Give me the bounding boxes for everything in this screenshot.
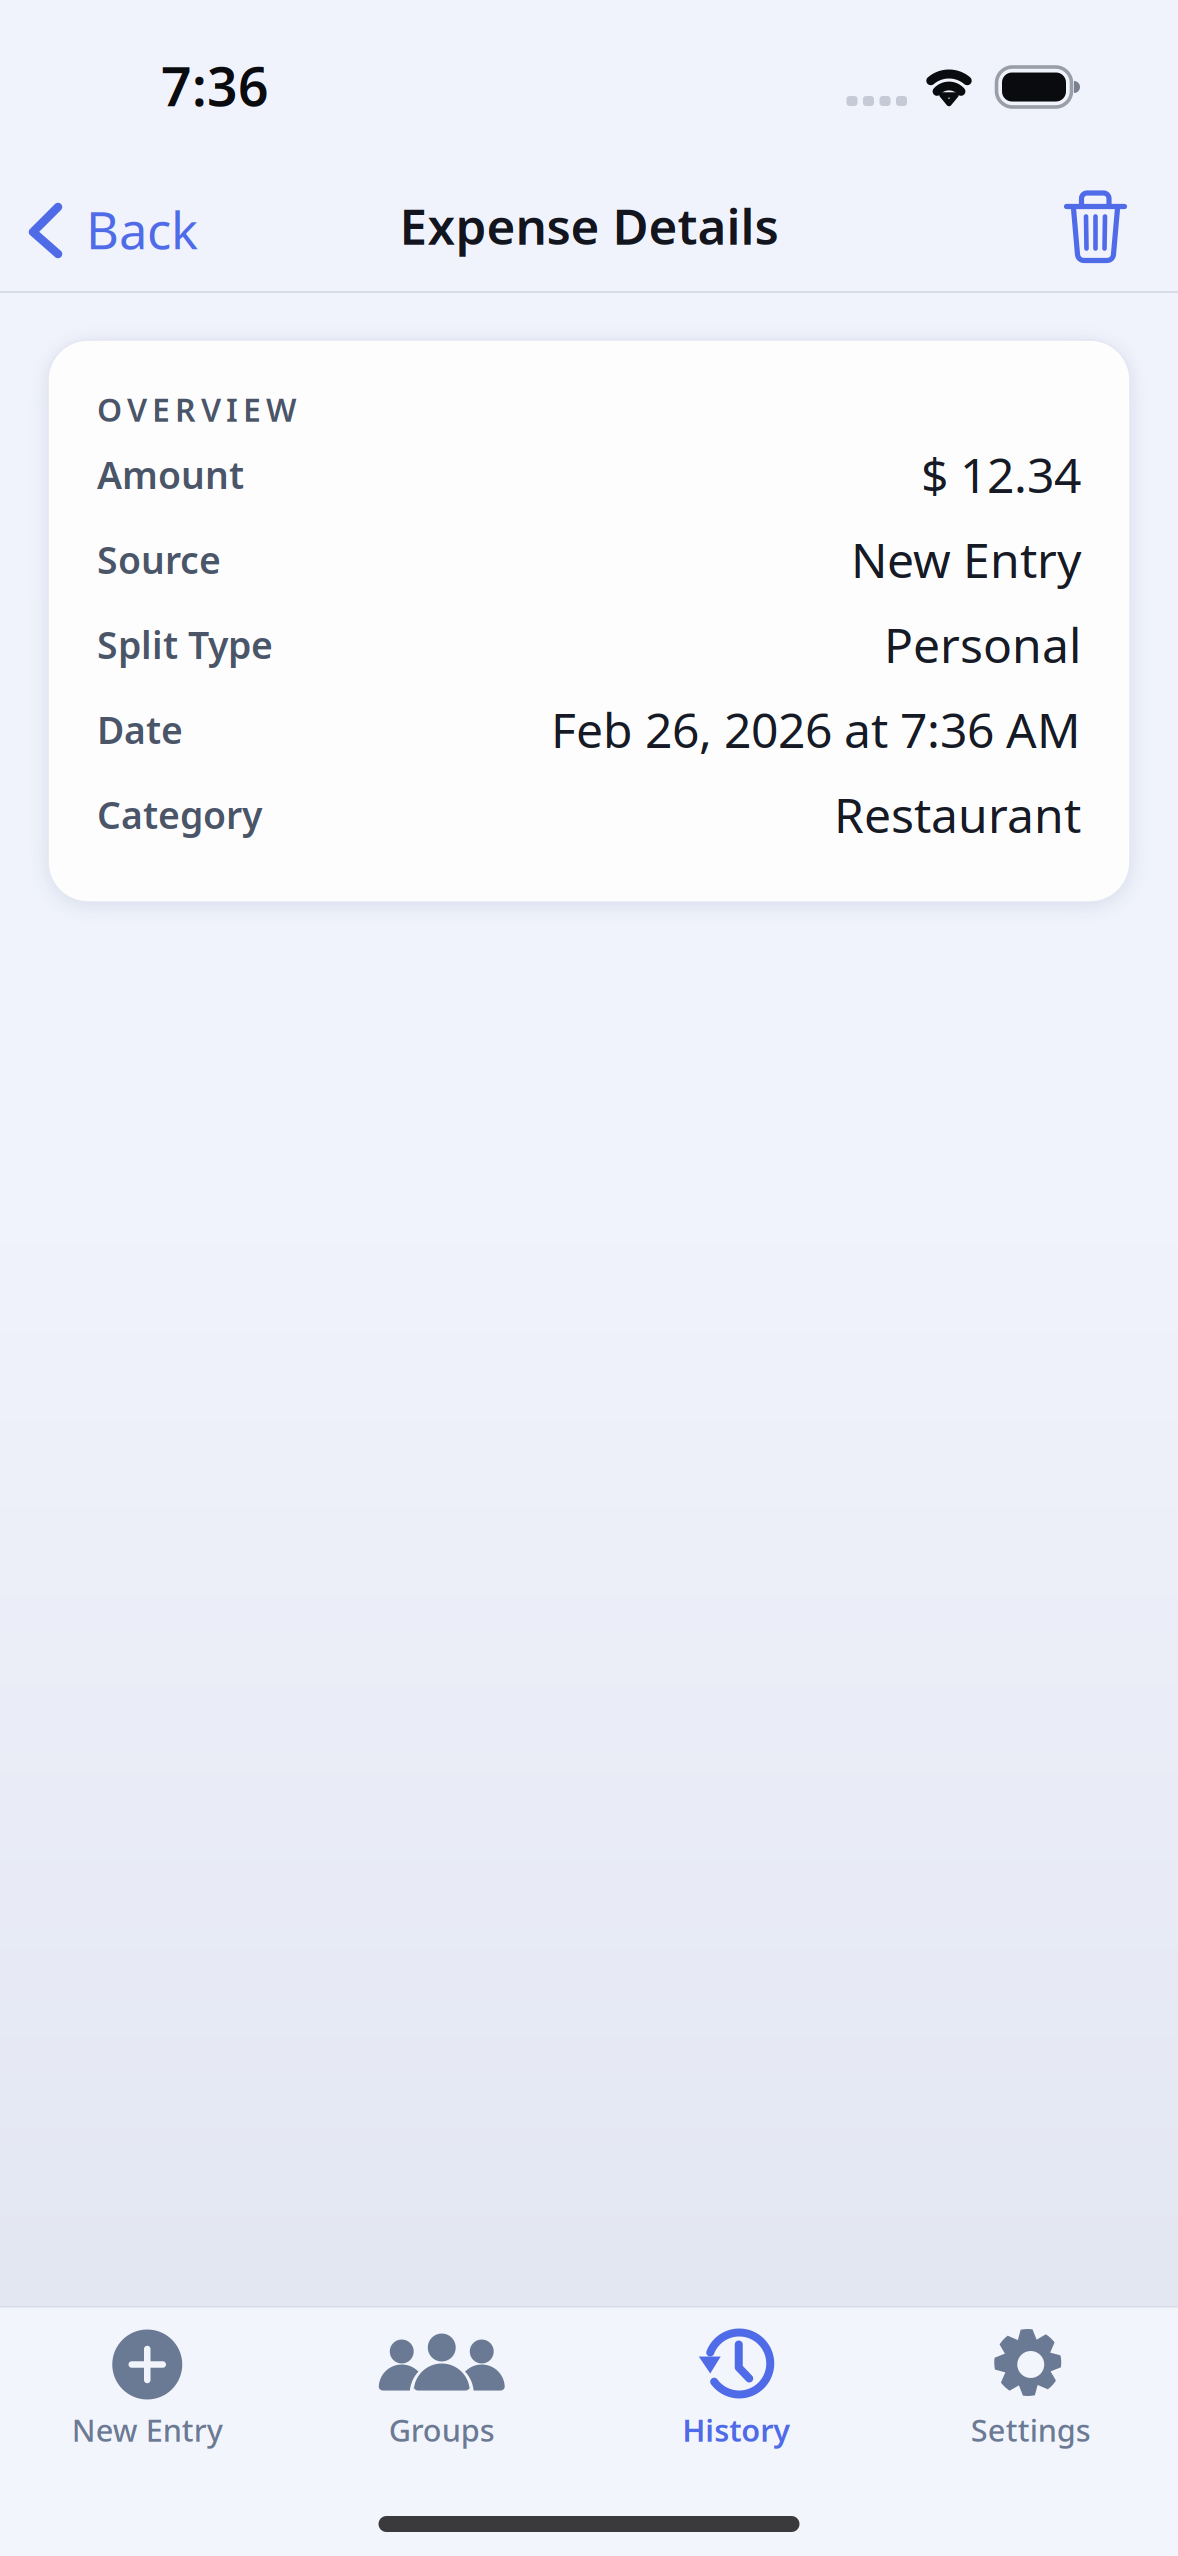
staticText: Personal [884,613,1081,676]
staticText: Back [86,196,198,263]
staticText: Date [97,705,183,754]
button[interactable]: Settings [883,2307,1178,2449]
button[interactable]: History [589,2307,883,2449]
staticText: Split Type [97,620,273,669]
button[interactable]: New Entry [0,2307,294,2449]
staticText: O V E R V I E W [97,388,296,430]
staticText: 7:36 [161,50,269,121]
staticText: Settings [971,2409,1091,2450]
button[interactable]: Back [0,170,218,273]
staticText: New Entry [72,2409,223,2450]
button[interactable]: Delete expense [1040,171,1178,271]
staticText: History [682,2409,790,2450]
staticText: Feb 26, 2026 at 7:36 AM [551,698,1081,761]
staticText: Amount [97,450,244,499]
staticText: Groups [389,2409,495,2450]
staticText: Expense Details [399,193,778,258]
staticText: New Entry [851,528,1081,591]
button[interactable]: Groups [294,2307,589,2449]
staticText: Source [97,535,221,584]
staticText: Category [97,790,262,839]
staticText: $ 12.34 [921,443,1081,506]
staticText: Restaurant [834,783,1081,846]
